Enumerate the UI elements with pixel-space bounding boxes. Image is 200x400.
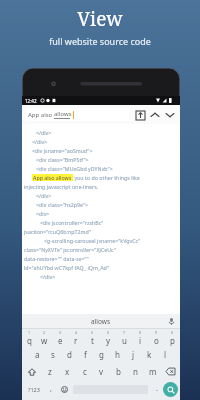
staticText: . [156,384,158,394]
button[interactable]: Search [163,382,178,397]
button[interactable]: 6 [100,329,116,346]
staticText: w [41,335,48,346]
staticText: <g-scrolling-carousel jsname="kVgvCc" [44,237,141,244]
button[interactable]: h [109,346,125,363]
staticText: 2 [43,330,46,335]
button[interactable]: v [93,363,110,380]
staticText: <div class="BmPStf"> [36,156,89,163]
button[interactable]: 7 [116,329,132,346]
button[interactable]: </div> [22,124,180,314]
button[interactable]: x [59,363,76,380]
staticText: 12:42 [25,98,37,104]
button[interactable]: 1 [22,329,37,346]
button[interactable]: 4 [68,329,84,346]
button[interactable]: a [29,346,45,363]
staticText: allows [91,317,111,326]
staticText: b [116,366,121,377]
button[interactable]: 5 [84,329,100,346]
staticText: class="NyXVTe" jscontroller="XjCeUc" [24,246,116,253]
staticText: a [35,349,40,360]
staticText: </div> [36,192,52,199]
button[interactable]: Backspace [161,363,180,380]
staticText: 6 [107,330,110,335]
button[interactable]: allows [22,314,180,328]
staticText: r [74,335,78,346]
staticText: 9 [155,330,158,335]
button[interactable]: Previous match [147,107,162,122]
staticText: m [149,366,157,377]
staticText: 1 [28,330,31,335]
button[interactable]: k [141,346,157,363]
button[interactable]: m [144,363,161,380]
staticText: </div> [36,129,52,136]
button[interactable]: j [125,346,141,363]
button[interactable]: ?123 [24,380,44,398]
staticText: <div jscontroller="rzshBc" [40,219,104,226]
staticText: App also [28,111,54,119]
staticText: 5 [91,330,94,335]
button[interactable]: 0 [164,329,180,346]
staticText: q [27,335,32,346]
staticText: ?123 [28,386,40,393]
staticText: </div> [40,273,56,280]
button[interactable]: 9 [148,329,164,346]
staticText: jsaction="rcuQ6b:npT2md" [24,228,91,235]
button[interactable]: s [45,346,61,363]
staticText: View [77,6,123,32]
button[interactable]: Share page [133,108,147,122]
staticText: 4 [75,330,78,335]
button[interactable]: Voice input [166,316,176,326]
staticText: x [65,366,70,377]
button[interactable]: d [61,346,77,363]
button[interactable]: 8 [132,329,148,346]
staticText: l [164,349,167,360]
staticText: <div class="MUxGbd yDYNvb"> [36,165,113,172]
button[interactable]: n [127,363,144,380]
staticText: p [170,335,175,346]
staticText: h [115,349,120,360]
staticText: j [132,349,135,360]
staticText: e [58,335,63,346]
staticText: injecting javascript one-liners. [24,183,99,190]
staticText: 8 [139,330,142,335]
button[interactable]: Next match [162,107,177,122]
staticText: App also allows [33,174,72,181]
staticText: you to do other things like [73,174,140,181]
staticText: n [133,366,138,377]
staticText: i [139,335,142,346]
staticText: allows [54,110,72,118]
staticText: u [122,335,127,346]
staticText: </div> [32,138,48,145]
button[interactable]: Emoji [57,380,71,398]
button[interactable]: l [157,346,173,363]
staticText: f [84,349,87,360]
button[interactable]: , [44,380,57,398]
button[interactable]: App also [25,108,129,121]
staticText: <div class="hs2p9e"> [36,201,89,208]
button[interactable]: . [150,380,163,398]
staticText: data-restore="" data-ss="" [24,255,89,262]
staticText: full website source code [49,35,151,47]
button[interactable]: z [41,363,59,380]
button[interactable]: Shift [22,363,41,380]
staticText: v [99,366,104,377]
staticText: d [67,349,72,360]
staticText: s [51,349,55,360]
staticText: t [91,335,94,346]
staticText: o [154,335,159,346]
staticText: k [147,349,152,360]
staticText: , [50,384,52,394]
button[interactable]: 3 [52,329,68,346]
button[interactable]: c [76,363,93,380]
button[interactable]: b [110,363,127,380]
button[interactable]: f [77,346,93,363]
staticText: <div jsname="aoSmud"> [32,147,93,154]
staticText: g [99,349,104,360]
button[interactable]: g [93,346,109,363]
staticText: c [83,366,87,377]
staticText: z [48,366,52,377]
button[interactable]: 2 [37,329,52,346]
staticText: 3 [59,330,62,335]
staticText: 0 [171,330,174,335]
